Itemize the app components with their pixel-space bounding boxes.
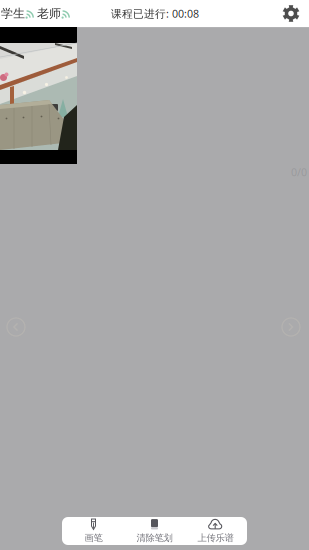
button[interactable]: 画笔 [63,517,124,545]
staticText: 清除笔划 [136,532,172,544]
staticText: 课程已进行: 00:08 [111,6,199,21]
staticText: 学生 [1,6,25,21]
button[interactable]: 清除笔划 [124,517,185,545]
staticText: 老师 [37,6,61,21]
button[interactable]: Settings [282,0,309,26]
staticText: 0/0 [291,165,307,179]
staticText: 画笔 [84,532,102,544]
button[interactable]: 上传乐谱 [185,517,246,545]
staticText: 上传乐谱 [197,532,233,544]
